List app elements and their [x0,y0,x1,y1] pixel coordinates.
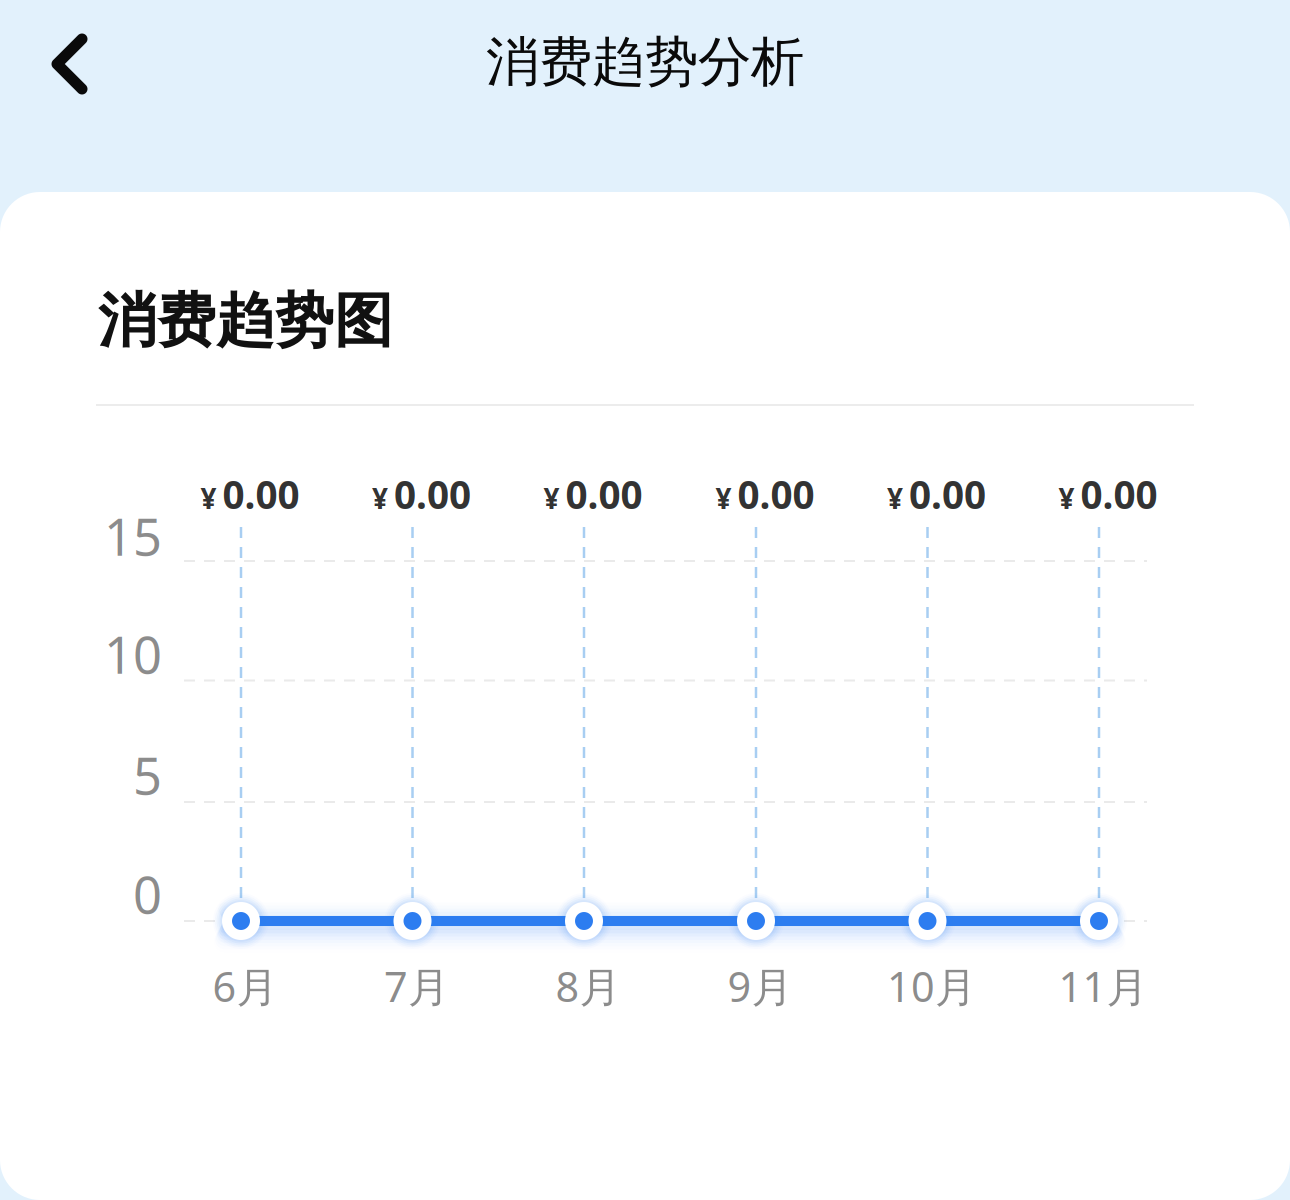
staticText: 消费趋势分析 [486,29,804,95]
staticText: ¥ [200,479,216,517]
staticText: 11月 [1058,959,1147,1013]
staticText: ¥ [1058,479,1074,517]
staticText: ¥ [887,479,903,517]
staticText: 10月 [887,959,976,1013]
staticText: 0.00 [222,468,299,520]
staticText: ¥ [372,479,388,517]
staticText: 消费趋势图 [98,285,393,357]
button[interactable]: 返回 [22,5,118,123]
staticText: 0.00 [909,468,986,520]
staticText: 0.00 [394,468,471,520]
staticText: 0.00 [1080,468,1157,520]
staticText: 8月 [555,959,620,1013]
staticText: 5 [133,741,162,809]
staticText: 0.00 [737,468,814,520]
staticText: 7月 [384,959,449,1013]
staticText: ¥ [715,479,731,517]
staticText: ¥ [543,479,559,517]
staticText: 0 [133,860,162,928]
staticText: 0.00 [565,468,642,520]
staticText: 9月 [727,959,792,1013]
staticText: 15 [104,502,162,570]
staticText: 6月 [212,959,277,1013]
staticText: 10 [104,620,162,688]
